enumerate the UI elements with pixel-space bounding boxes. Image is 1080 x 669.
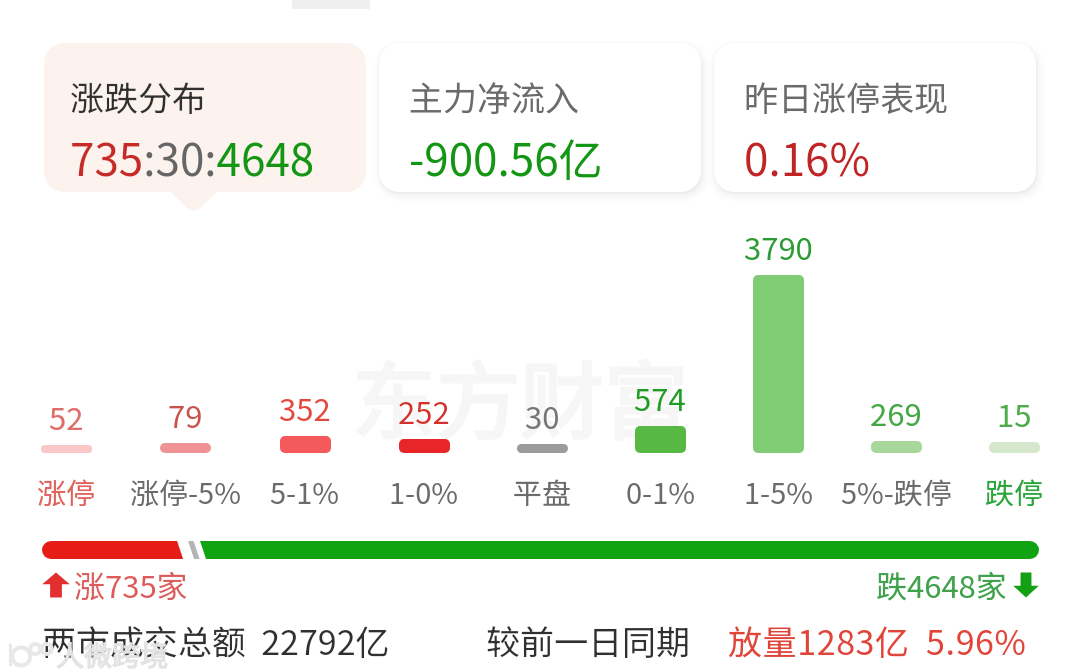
button[interactable]: 涨停-5% [126,470,245,506]
staticText: 两市成交总额 22792亿 [42,616,390,665]
other: Advance decline ratio [42,533,1039,559]
button[interactable]: 主力净流入 [379,43,701,192]
button[interactable]: 涨停 [7,470,126,506]
staticText: 涨735家 [74,562,188,607]
button[interactable]: 平盘 [483,470,601,506]
staticText: 0.16% [744,125,871,189]
staticText: 5-1% [270,470,339,506]
staticText: 跌4648家 [876,562,1007,607]
other: Declining [1013,571,1039,599]
staticText: 较前一日同期 [486,616,690,665]
button[interactable]: 252 [364,200,483,453]
staticText: 东方财富 [352,335,689,457]
button[interactable]: 5%-跌停 [837,470,955,506]
button[interactable]: 3790 [719,200,837,453]
staticText: 涨停 [37,470,96,506]
staticText: 269 [870,390,922,435]
staticText: 主力净流入 [409,72,579,121]
staticText: 15 [997,391,1032,436]
button[interactable]: Advancing [42,562,188,607]
staticText: -900.56亿 [409,125,603,189]
staticText: 涨停-5% [130,470,241,506]
staticText: 735:30:4648 [70,125,315,189]
staticText: 3790 [744,224,813,269]
staticText: 1-5% [744,470,813,506]
staticText: 0-1% [626,470,695,506]
button[interactable]: 269 [837,200,955,453]
staticText: 人微跨境 [56,634,169,669]
button[interactable]: 52 [7,200,126,453]
button[interactable]: 574 [601,200,719,453]
other: Advancing [42,571,70,599]
staticText: 跌停 [985,470,1044,506]
staticText: 昨日涨停表现 [744,72,948,121]
button[interactable]: 昨日涨停表现 [714,43,1036,192]
button[interactable]: 352 [245,200,364,453]
button[interactable]: 跌停 [955,470,1073,506]
staticText: 1-0% [389,470,458,506]
button[interactable]: 涨跌分布 [44,43,366,192]
staticText: 涨跌分布 [70,72,206,121]
staticText: 5%-跌停 [841,470,952,506]
button[interactable]: 5-1% [245,470,364,506]
button[interactable]: 跌4648家 [876,562,1039,607]
staticText: 平盘 [513,470,572,506]
button[interactable]: 1-5% [719,470,837,506]
staticText: 79 [168,392,203,437]
staticText: 52 [49,394,84,439]
button[interactable]: 30 [483,200,601,453]
button[interactable]: 0-1% [601,470,719,506]
staticText: 574 [634,375,686,420]
staticText: 252 [398,388,450,433]
button[interactable]: 15 [955,200,1073,453]
button[interactable]: 1-0% [364,470,483,506]
staticText: 放量1283亿 5.96% [728,616,1027,665]
staticText: 30 [525,393,560,438]
button[interactable]: 79 [126,200,245,453]
staticText: 352 [279,385,331,430]
